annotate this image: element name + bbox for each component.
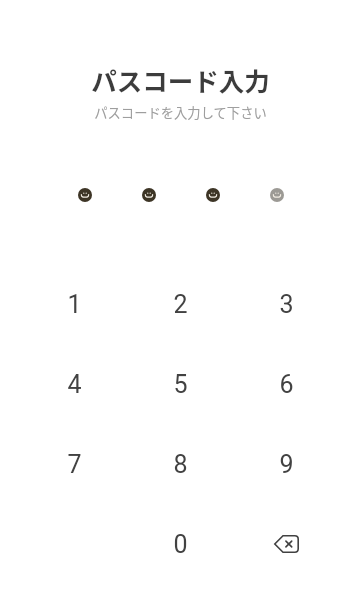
staticText: 4 [67, 370, 82, 399]
button[interactable]: Backspace [233, 504, 339, 584]
button[interactable]: 0 [127, 504, 233, 584]
button[interactable]: 1 [21, 264, 127, 344]
button[interactable]: 6 [233, 344, 339, 424]
staticText: パスコード入力 [91, 61, 270, 98]
button[interactable]: 2 [127, 264, 233, 344]
staticText: 2 [173, 290, 188, 319]
button[interactable]: 8 [127, 424, 233, 504]
staticText: 5 [173, 370, 188, 399]
button[interactable]: 5 [127, 344, 233, 424]
button[interactable]: 3 [233, 264, 339, 344]
staticText: パスコードを入力して下さい [94, 103, 267, 122]
staticText: 3 [279, 290, 294, 319]
staticText: 7 [67, 450, 82, 479]
button[interactable]: 4 [21, 344, 127, 424]
staticText: 0 [173, 530, 188, 559]
staticText: 9 [279, 450, 294, 479]
staticText: 1 [67, 290, 82, 319]
button[interactable]: 9 [233, 424, 339, 504]
button[interactable]: 7 [21, 424, 127, 504]
staticText: 6 [279, 370, 294, 399]
staticText: 8 [173, 450, 188, 479]
